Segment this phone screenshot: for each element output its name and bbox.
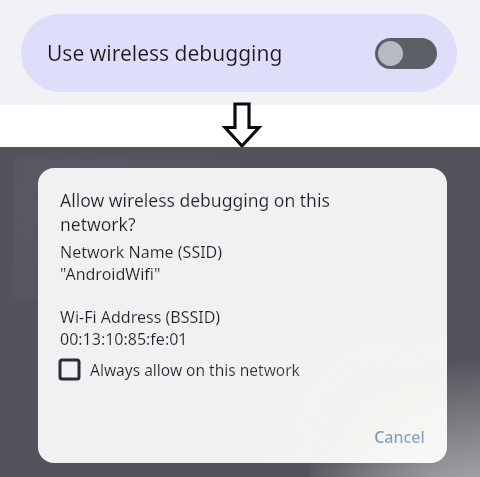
button[interactable]: Cancel (360, 417, 439, 457)
staticText: Network Name (SSID) (60, 241, 223, 263)
staticText: Cancel (374, 426, 425, 448)
staticText: Always allow on this network (90, 359, 300, 380)
staticText: Wi-Fi Address (BSSID) (60, 306, 221, 328)
button[interactable]: Use wireless debugging (21, 14, 457, 92)
button[interactable]: Use wireless debugging toggle (375, 38, 437, 69)
button[interactable]: Always allow on this network (60, 359, 300, 380)
staticText: 00:13:10:85:fe:01 (60, 328, 188, 350)
staticText: "AndroidWifi" (60, 263, 161, 285)
staticText: Use wireless debugging (47, 39, 283, 68)
staticText: Allow wireless debugging on this network… (60, 188, 330, 236)
